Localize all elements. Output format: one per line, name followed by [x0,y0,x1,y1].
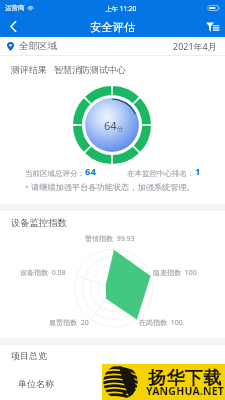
staticText: 单位名称 [18,378,54,389]
staticText: 64 [85,165,96,178]
staticText: 分 [117,125,123,133]
staticText: 请继续加强平台各功能状态，加强系统管理。 [31,182,195,192]
staticText: 运营商 [5,4,25,12]
button[interactable]: 筛选 [202,16,222,37]
button[interactable]: 返回 [3,16,23,37]
staticText: 安全评估 [90,20,136,34]
staticText: YANGHUA.NET [146,384,225,398]
button[interactable]: 全部区域 [7,40,57,52]
staticText: 在本监控中心排名： [127,169,195,178]
staticText: 隐患指数 100 [153,268,197,278]
staticText: 警情指数 99.93 [85,234,135,244]
staticText: 智慧消防测试中心 [54,64,126,75]
staticText: 扬华下载 [148,367,222,390]
staticText: 全部区域 [19,40,57,52]
staticText: 设备监控指数 [11,217,67,229]
staticText: 64 [104,118,117,133]
staticText: 项目总览 [11,350,47,361]
staticText: 当前区域总评分： [25,169,85,178]
staticText: 设备指数 0.08 [20,268,66,278]
staticText: 上午 11:20 [105,4,137,13]
staticText: 测评结果 [11,64,47,75]
staticText: 1 [195,165,201,178]
staticText: 在岗指数 100 [139,318,183,328]
button[interactable]: 2021年4月 [173,40,217,52]
staticText: 履责指数 20 [49,318,89,328]
